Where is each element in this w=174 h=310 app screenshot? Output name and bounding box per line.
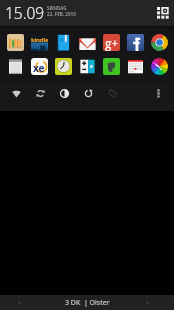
button[interactable]: Quick settings: [150, 0, 174, 26]
staticText: g+: [105, 35, 119, 51]
button[interactable]: Calendar: [127, 58, 151, 75]
button[interactable]: Notes: [7, 58, 31, 75]
button[interactable]: Gmail: [79, 34, 103, 51]
staticText: 15.09: [5, 2, 45, 23]
staticText: xe: [33, 61, 45, 75]
staticText: 3 DK | Oister: [65, 298, 110, 308]
button[interactable]: More options: [150, 82, 174, 111]
button[interactable]: Calculator: [79, 58, 103, 75]
button[interactable]: Wi-Fi: [4, 82, 28, 111]
button[interactable]: Rotate: [76, 82, 100, 111]
button[interactable]: Brightness: [52, 82, 76, 111]
button[interactable]: Auto-rotate lock: [100, 82, 124, 111]
button[interactable]: Evernote: [103, 58, 127, 75]
staticText: SØNDAG: [47, 5, 67, 11]
button[interactable]: Google Plus: [103, 34, 127, 51]
button[interactable]: Play Books: [7, 34, 31, 51]
button[interactable]: Colors: [151, 58, 174, 75]
staticText: kindle: [31, 36, 48, 44]
button[interactable]: Dictionary: [55, 34, 79, 51]
button[interactable]: XE Currency: [31, 58, 55, 75]
button[interactable]: Kindle: [31, 34, 55, 51]
staticText: 22. FEB. 2015: [47, 11, 76, 17]
button[interactable]: Facebook: [127, 34, 151, 51]
button[interactable]: Sync: [28, 82, 52, 111]
button[interactable]: Chrome: [151, 34, 174, 51]
button[interactable]: Clock: [55, 58, 79, 75]
